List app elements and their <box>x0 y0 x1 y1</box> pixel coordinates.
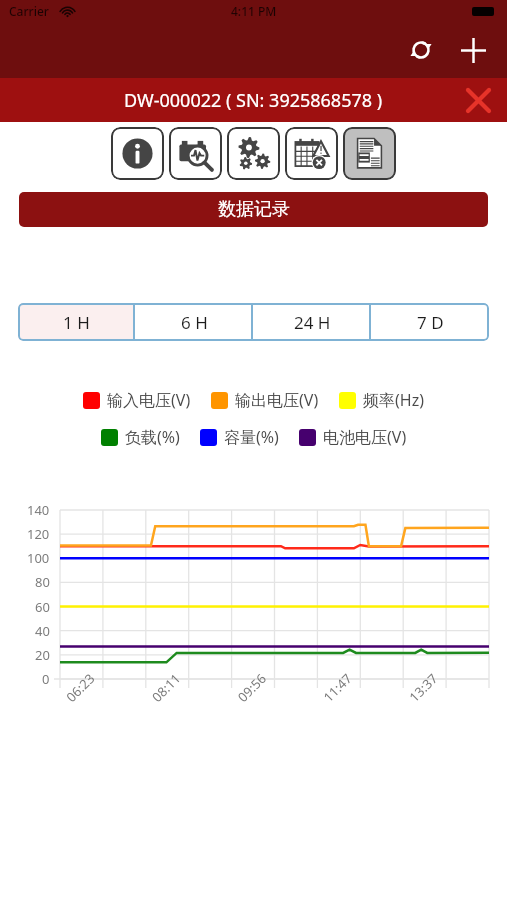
button[interactable]: Add <box>451 28 495 72</box>
staticText: 24 H <box>294 311 331 334</box>
button[interactable]: Measurements <box>169 127 222 180</box>
staticText: 4:11 PM <box>231 3 277 19</box>
staticText: 输入电压(V) <box>107 389 191 411</box>
staticText: 数据记录 <box>218 198 290 221</box>
button[interactable]: 容量(%) <box>200 426 279 448</box>
staticText: 输出电压(V) <box>235 389 319 411</box>
button[interactable]: 输入电压(V) <box>83 389 191 411</box>
staticText: 1 H <box>63 311 90 334</box>
button[interactable]: Data log <box>343 127 396 180</box>
staticText: Carrier <box>9 3 49 19</box>
button[interactable]: 频率(Hz) <box>339 389 424 411</box>
button[interactable]: Settings <box>227 127 280 180</box>
staticText: 容量(%) <box>224 426 279 448</box>
staticText: DW-000022 ( SN: 3925868578 ) <box>124 88 383 113</box>
button[interactable]: 6 H <box>135 303 253 341</box>
staticText: 7 D <box>417 311 444 334</box>
button[interactable]: Refresh <box>399 28 443 72</box>
button[interactable]: Close <box>457 79 499 121</box>
button[interactable]: 输出电压(V) <box>211 389 319 411</box>
button[interactable]: 电池电压(V) <box>299 426 407 448</box>
button[interactable]: Information <box>111 127 164 180</box>
button[interactable]: 负载(%) <box>101 426 180 448</box>
staticText: 电池电压(V) <box>323 426 407 448</box>
button[interactable]: 24 H <box>253 303 371 341</box>
button[interactable]: 1 H <box>18 303 135 341</box>
button[interactable]: 7 D <box>371 303 489 341</box>
button[interactable]: Schedule shutdown <box>285 127 338 180</box>
staticText: 6 H <box>181 311 208 334</box>
staticText: 频率(Hz) <box>363 389 424 411</box>
staticText: 负载(%) <box>125 426 180 448</box>
button[interactable]: 数据记录 <box>19 192 488 227</box>
